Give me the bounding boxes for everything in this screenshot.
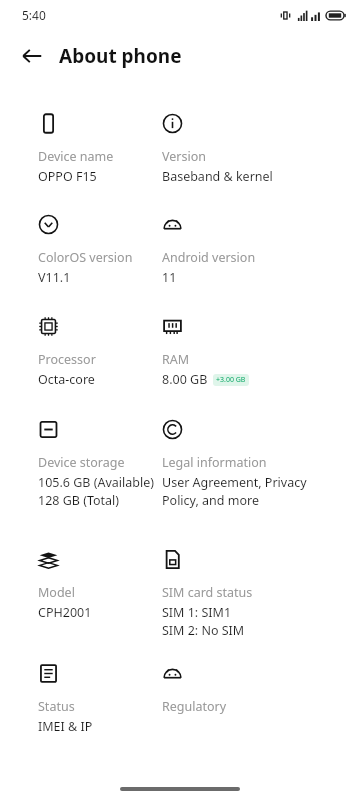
staticText: IMEI & IP bbox=[38, 718, 93, 735]
button[interactable]: Processor bbox=[38, 316, 162, 388]
staticText: Baseband & kernel bbox=[162, 168, 273, 185]
button[interactable]: SIM card status bbox=[162, 549, 324, 639]
staticText: Processor bbox=[38, 351, 96, 368]
staticText: 105.6 GB (Available) 128 GB (Total) bbox=[38, 474, 154, 509]
staticText: 8.00 GB bbox=[162, 371, 208, 388]
staticText: +3.00 GB bbox=[216, 375, 246, 385]
staticText: V11.1 bbox=[38, 269, 71, 286]
button[interactable]: RAM bbox=[162, 316, 324, 388]
staticText: Version bbox=[162, 148, 206, 165]
button[interactable]: Android version bbox=[162, 214, 324, 286]
staticText: About phone bbox=[59, 43, 182, 69]
staticText: SIM 1: SIM1 SIM 2: No SIM bbox=[162, 604, 245, 639]
staticText: Regulatory bbox=[162, 698, 227, 715]
staticText: Android version bbox=[162, 249, 256, 266]
staticText: RAM bbox=[162, 351, 190, 368]
button[interactable]: Regulatory bbox=[162, 663, 324, 715]
staticText: Status bbox=[38, 698, 75, 715]
staticText: 11 bbox=[162, 269, 177, 286]
button[interactable]: ColorOS version bbox=[38, 214, 162, 286]
button[interactable]: Status bbox=[38, 663, 162, 735]
button[interactable]: Device storage bbox=[38, 419, 162, 509]
button[interactable]: Version bbox=[162, 113, 324, 185]
button[interactable]: Device name bbox=[38, 113, 162, 185]
staticText: Device storage bbox=[38, 454, 125, 471]
staticText: ColorOS version bbox=[38, 249, 133, 266]
button[interactable]: Legal information bbox=[162, 419, 324, 509]
staticText: Device name bbox=[38, 148, 114, 165]
staticText: Legal information bbox=[162, 454, 267, 471]
staticText: OPPO F15 bbox=[38, 168, 97, 185]
staticText: User Agreement, Privacy Policy, and more bbox=[162, 474, 324, 509]
staticText: Octa-core bbox=[38, 371, 95, 388]
staticText: SIM card status bbox=[162, 584, 253, 601]
staticText: 5:40 bbox=[22, 7, 46, 23]
staticText: Model bbox=[38, 584, 75, 601]
button[interactable]: Back bbox=[10, 34, 54, 78]
staticText: CPH2001 bbox=[38, 604, 92, 621]
button[interactable]: Model bbox=[38, 549, 162, 621]
